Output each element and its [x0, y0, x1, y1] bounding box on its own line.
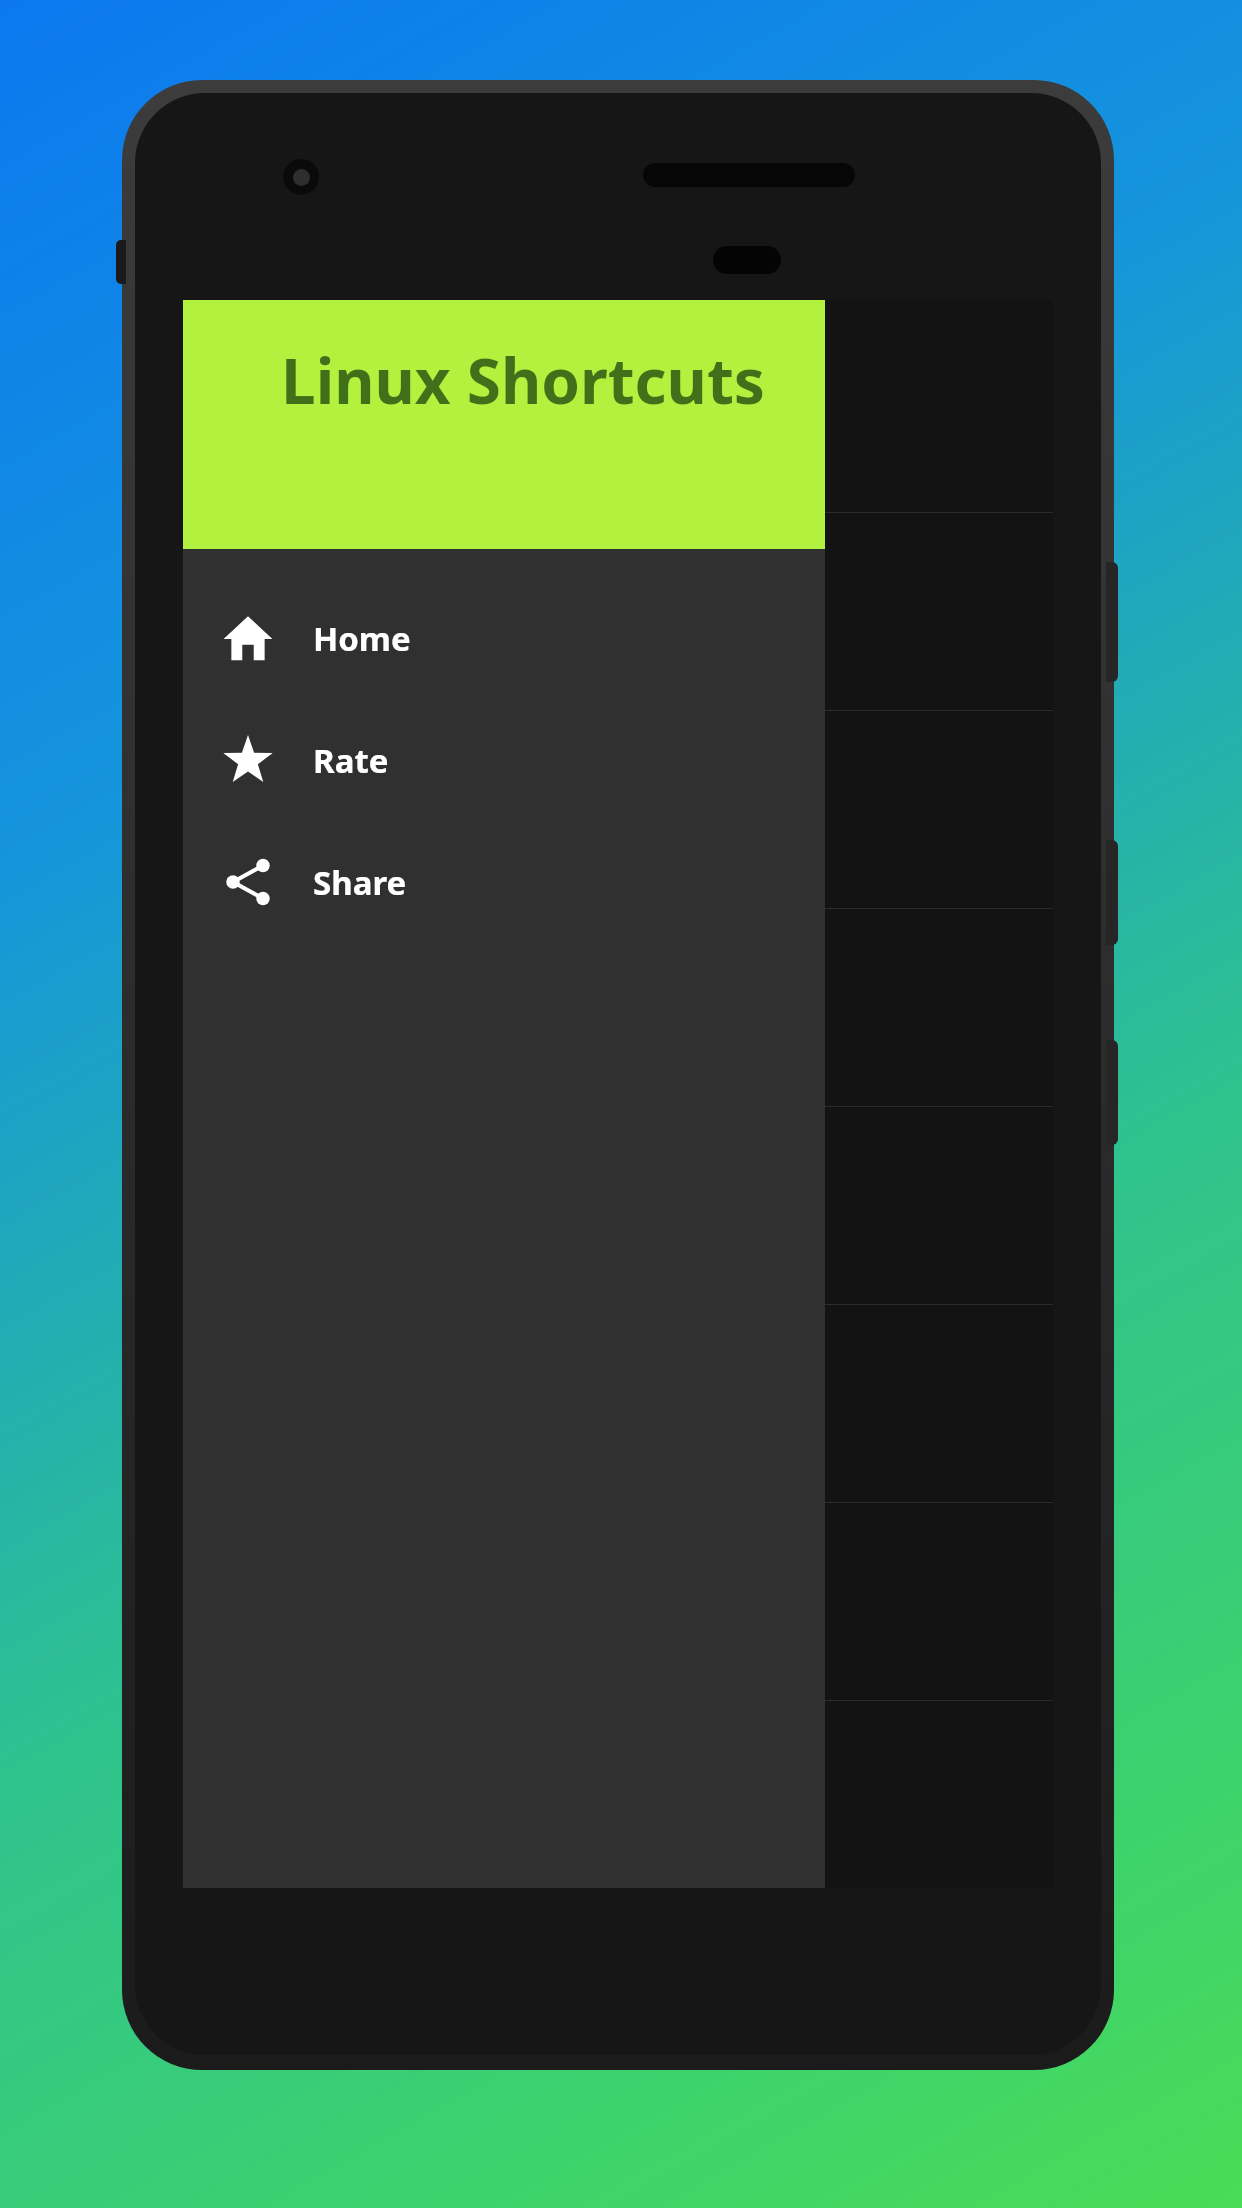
staticText: Home	[313, 616, 411, 661]
staticText: Share	[313, 860, 407, 905]
staticText: Linux Shortcuts	[281, 338, 765, 422]
staticText: Rate	[313, 738, 389, 783]
button[interactable]: Share	[183, 821, 825, 943]
other: Share	[223, 857, 273, 907]
other: Rate	[222, 734, 274, 786]
other: Home	[222, 612, 274, 664]
button[interactable]: Home	[183, 577, 825, 699]
button[interactable]: Rate	[183, 699, 825, 821]
